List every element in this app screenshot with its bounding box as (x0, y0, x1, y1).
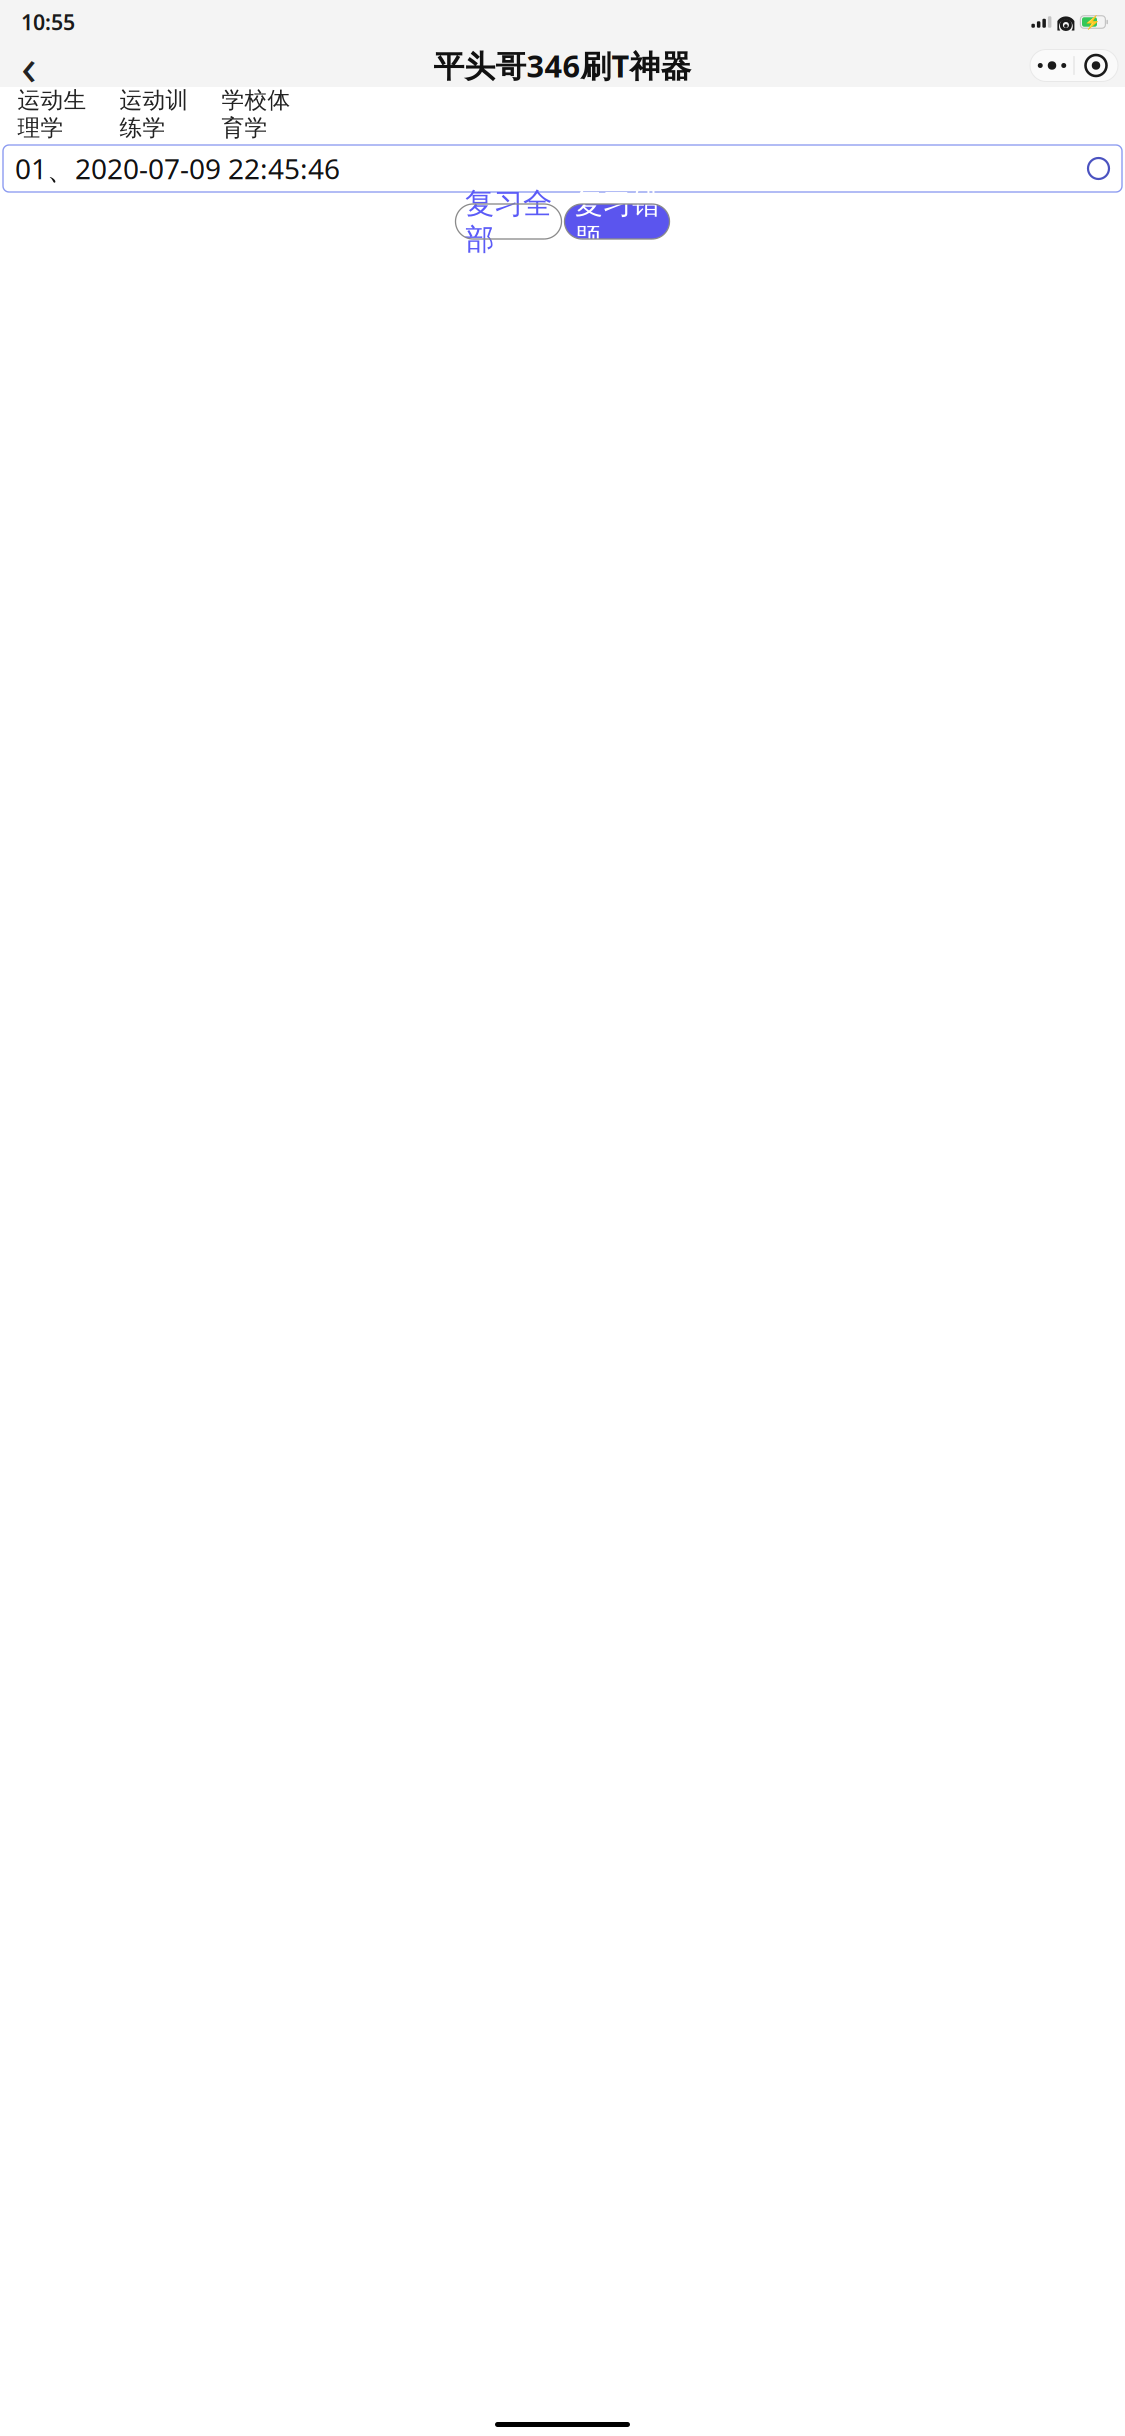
staticText: 复习错题 (573, 185, 660, 258)
staticText: 运动生理学 (17, 86, 86, 142)
staticText: ⚡ (1084, 14, 1101, 30)
staticText: ‹ (21, 32, 37, 99)
button[interactable]: 复习全部 (455, 204, 561, 239)
button[interactable]: 运动训练学 (112, 98, 196, 134)
staticText: 平头哥346刷T神器 (433, 45, 691, 86)
staticText: 复习全部 (465, 185, 552, 258)
button[interactable]: Back (7, 43, 51, 87)
staticText: 运动训练学 (119, 86, 188, 142)
staticText: 学校体育学 (221, 86, 290, 142)
button[interactable]: 学校体育学 (214, 98, 298, 134)
staticText: 01、2020-07-09 22:45:46 (15, 150, 340, 187)
button[interactable]: Close (1074, 49, 1117, 81)
button[interactable]: More (1030, 49, 1073, 81)
button[interactable]: 运动生理学 (10, 98, 94, 134)
staticText: 10:55 (21, 8, 75, 36)
button[interactable]: 复习错题 (564, 204, 669, 239)
button[interactable]: 01、2020-07-09 22:45:46 (3, 145, 1122, 192)
